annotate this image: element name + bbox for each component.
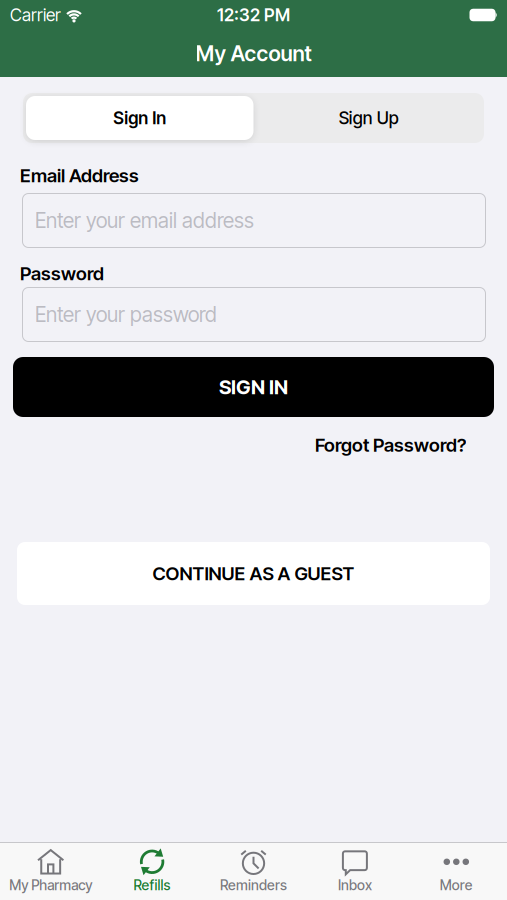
staticText: CONTINUE AS A GUEST xyxy=(152,562,354,585)
button[interactable]: Sign Up xyxy=(253,96,484,140)
button[interactable]: SIGN IN xyxy=(13,357,494,417)
staticText: Refills xyxy=(134,877,171,894)
staticText: More xyxy=(440,877,473,894)
staticText: My Pharmacy xyxy=(9,877,92,894)
staticText: SIGN IN xyxy=(219,375,288,399)
button[interactable]: Sign In xyxy=(23,96,253,140)
button[interactable]: Refills xyxy=(101,849,203,894)
staticText: Forgot Password? xyxy=(315,434,466,456)
staticText: Carrier xyxy=(10,4,61,25)
button[interactable]: Reminders xyxy=(203,849,304,894)
staticText: Email Address xyxy=(20,164,139,187)
button[interactable]: Inbox xyxy=(304,849,406,894)
button[interactable]: More xyxy=(406,849,507,894)
staticText: 12:32 PM xyxy=(217,4,290,25)
button[interactable]: My Pharmacy xyxy=(0,849,101,894)
button[interactable]: CONTINUE AS A GUEST xyxy=(17,542,490,605)
staticText: My Account xyxy=(195,41,311,66)
staticText: Password xyxy=(20,262,104,285)
staticText: Sign In xyxy=(113,107,166,128)
staticText: Sign Up xyxy=(339,107,399,128)
staticText: Reminders xyxy=(220,877,287,894)
button[interactable]: Forgot Password? xyxy=(315,434,466,456)
staticText: Enter your password xyxy=(35,302,217,327)
staticText: Enter your email address xyxy=(35,208,254,233)
staticText: Inbox xyxy=(338,877,372,894)
